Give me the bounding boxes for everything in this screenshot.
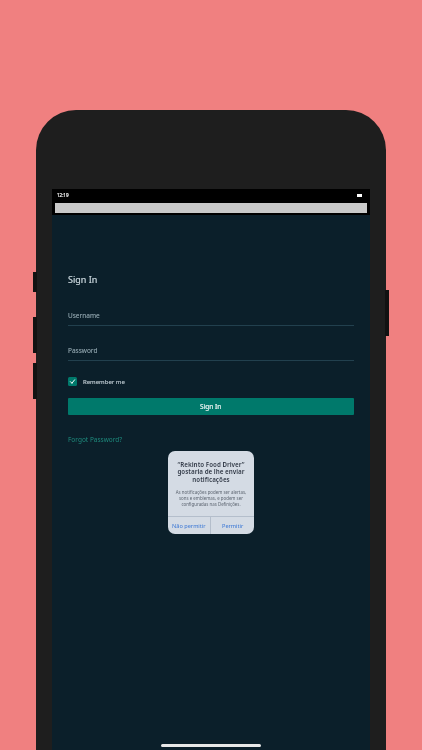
button[interactable]: Não permitir [168, 517, 210, 534]
staticText: “Rekinto Food Driver” gostaria de lhe en… [174, 460, 248, 484]
button[interactable]: Password [68, 346, 354, 361]
staticText: Sign In [200, 402, 222, 411]
staticText: Username [68, 311, 100, 320]
button[interactable]: Remember me [68, 375, 125, 388]
staticText: Forgot Password? [68, 435, 123, 444]
staticText: As notificações podem ser alertas, sons … [174, 489, 248, 507]
staticText: 12:19 [57, 192, 69, 198]
staticText: Sign In [68, 273, 98, 285]
staticText: Password [68, 346, 98, 355]
staticText: Remember me [83, 378, 125, 386]
button[interactable]: Sign In [68, 398, 354, 415]
button[interactable]: Forgot Password? [68, 433, 123, 446]
button[interactable]: Username [68, 311, 354, 326]
button[interactable]: Permitir [211, 517, 254, 534]
staticText: Não permitir [172, 522, 206, 530]
staticText: Permitir [222, 522, 244, 530]
